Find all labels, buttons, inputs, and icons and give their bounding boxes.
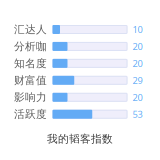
staticText: 财富值: [14, 74, 47, 87]
staticText: 活跃度: [14, 108, 47, 121]
staticText: 20: [132, 91, 142, 103]
button[interactable]: 活跃度: [14, 106, 156, 123]
staticText: 影响力: [14, 91, 47, 104]
staticText: 10: [132, 23, 142, 36]
button[interactable]: 分析咖: [14, 38, 156, 55]
staticText: 29: [132, 74, 142, 86]
button[interactable]: 知名度: [14, 55, 156, 72]
staticText: 知名度: [14, 57, 47, 70]
button[interactable]: 财富值: [14, 72, 156, 89]
button[interactable]: 汇达人: [14, 21, 156, 38]
staticText: 20: [132, 40, 142, 53]
staticText: 分析咖: [14, 40, 47, 53]
staticText: 我的韬客指数: [47, 132, 113, 145]
staticText: 汇达人: [14, 23, 47, 36]
staticText: 53: [132, 108, 142, 120]
button[interactable]: 影响力: [14, 89, 156, 106]
staticText: 20: [132, 57, 142, 70]
